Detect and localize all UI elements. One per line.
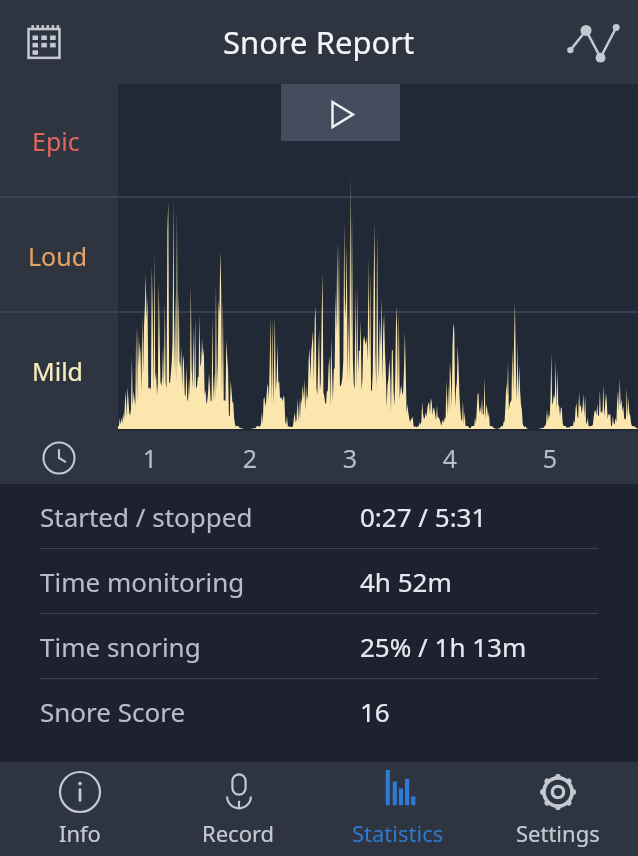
staticText: Time monitoring [40, 564, 245, 599]
staticText: Snore Report [223, 21, 415, 63]
button[interactable]: Epic [0, 84, 638, 431]
staticText: Mild [32, 354, 83, 388]
staticText: Time snoring [40, 629, 201, 664]
staticText: Loud [28, 239, 88, 273]
staticText: 3 [330, 441, 370, 475]
button[interactable]: Started / stopped [0, 484, 638, 549]
button[interactable]: Info [0, 762, 159, 856]
staticText: Epic [32, 124, 80, 158]
button[interactable]: Settings [478, 762, 638, 856]
button[interactable]: Trends [560, 9, 626, 75]
button[interactable]: Snore Score [0, 679, 638, 743]
staticText: 16 [360, 694, 390, 729]
button[interactable]: Record [159, 762, 318, 856]
staticText: 4 [430, 441, 470, 475]
staticText: 25% / 1h 13m [360, 629, 527, 664]
other: Time scale [42, 441, 76, 475]
staticText: 0:27 / 5:31 [360, 499, 487, 534]
staticText: Snore Score [40, 694, 186, 729]
staticText: Started / stopped [40, 499, 253, 534]
staticText: Record [202, 818, 275, 848]
staticText: 5 [530, 441, 570, 475]
staticText: 2 [230, 441, 270, 475]
button[interactable]: Calendar [16, 14, 72, 70]
button[interactable]: Statistics [318, 762, 478, 856]
staticText: Statistics [352, 818, 444, 848]
staticText: 1 [130, 441, 170, 475]
button[interactable]: Time snoring [0, 614, 638, 679]
staticText: Settings [516, 818, 600, 848]
staticText: Info [59, 818, 101, 848]
staticText: 4h 52m [360, 564, 452, 599]
button[interactable]: Time monitoring [0, 549, 638, 614]
